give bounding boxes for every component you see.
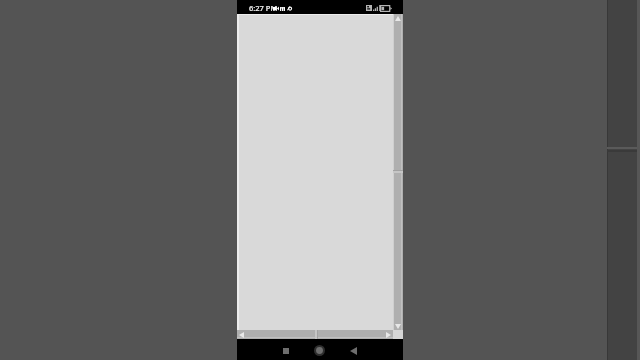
- button[interactable]: Recent apps: [272, 339, 300, 360]
- button[interactable]: Home: [305, 339, 333, 360]
- button[interactable]: Back: [339, 339, 367, 360]
- staticText: 6:27 PM: [249, 3, 278, 13]
